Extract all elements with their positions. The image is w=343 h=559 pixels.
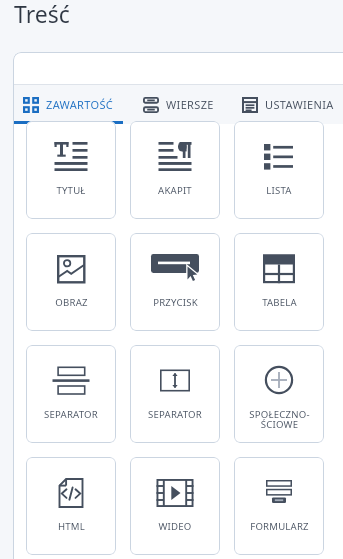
button[interactable]: OBRAZ [26, 233, 116, 331]
button[interactable]: LISTA [234, 121, 324, 219]
button[interactable]: WIDEO [130, 457, 220, 555]
staticText: SEPARATOR [44, 408, 98, 421]
button[interactable]: TYTUŁ [26, 121, 116, 219]
button[interactable]: HTML [26, 457, 116, 555]
staticText: FORMULARZ [250, 520, 309, 533]
button[interactable]: AKAPIT [130, 121, 220, 219]
staticText: Treść [14, 0, 70, 29]
staticText: SEPARATOR [148, 408, 202, 421]
button[interactable]: SEPARATOR [26, 345, 116, 443]
staticText: ZAWARTOŚĆ [46, 97, 114, 112]
button[interactable]: TABELA [234, 233, 324, 331]
staticText: TYTUŁ [56, 184, 86, 197]
button[interactable]: WIERSZE [123, 85, 233, 124]
staticText: TABELA [262, 296, 297, 309]
button[interactable]: PRZYCISK [130, 233, 220, 331]
staticText: USTAWIENIA [265, 97, 334, 112]
staticText: OBRAZ [55, 296, 88, 309]
button[interactable]: SPOŁECZNO- ŚCIOWE [234, 345, 324, 443]
button[interactable]: SEPARATOR [130, 345, 220, 443]
staticText: WIERSZE [166, 97, 214, 112]
staticText: AKAPIT [158, 184, 192, 197]
staticText: WIDEO [158, 520, 192, 533]
staticText: SPOŁECZNO- ŚCIOWE [249, 408, 310, 431]
staticText: HTML [58, 520, 85, 533]
button[interactable]: FORMULARZ [234, 457, 324, 555]
button[interactable]: USTAWIENIA [233, 85, 343, 124]
staticText: LISTA [266, 184, 292, 197]
staticText: PRZYCISK [153, 296, 198, 309]
button[interactable]: ZAWARTOŚĆ [13, 85, 123, 124]
